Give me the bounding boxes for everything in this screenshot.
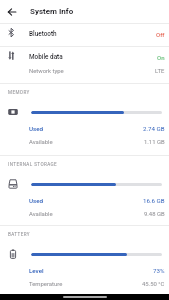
staticText: Level [29, 267, 44, 274]
staticText: Available [29, 139, 53, 146]
staticText: MEMORY [8, 90, 30, 95]
staticText: Used [29, 197, 44, 204]
staticText: LTE [155, 68, 165, 75]
staticText: 1.11 GB [144, 139, 165, 146]
staticText: Off [156, 31, 165, 38]
staticText: 2.74 GB [143, 125, 165, 132]
staticText: INTERNAL STORAGE [8, 162, 58, 167]
staticText: Available [29, 211, 53, 218]
staticText: 9.48 GB [144, 211, 165, 218]
staticText: On [157, 54, 165, 61]
button[interactable]: Bluetooth [0, 26, 169, 40]
staticText: BATTERY [8, 232, 30, 237]
staticText: Used [29, 125, 44, 132]
button[interactable]: Back [3, 0, 20, 23]
staticText: Bluetooth [29, 30, 57, 38]
staticText: Network type [29, 68, 64, 75]
staticText: Mobile data [29, 53, 63, 61]
staticText: 16.6 GB [143, 197, 165, 204]
staticText: 45.50 °C [142, 281, 165, 288]
button[interactable]: Mobile data [0, 49, 169, 63]
staticText: Temperature [29, 281, 63, 288]
staticText: System Info [30, 7, 74, 16]
staticText: 73% [153, 267, 165, 274]
